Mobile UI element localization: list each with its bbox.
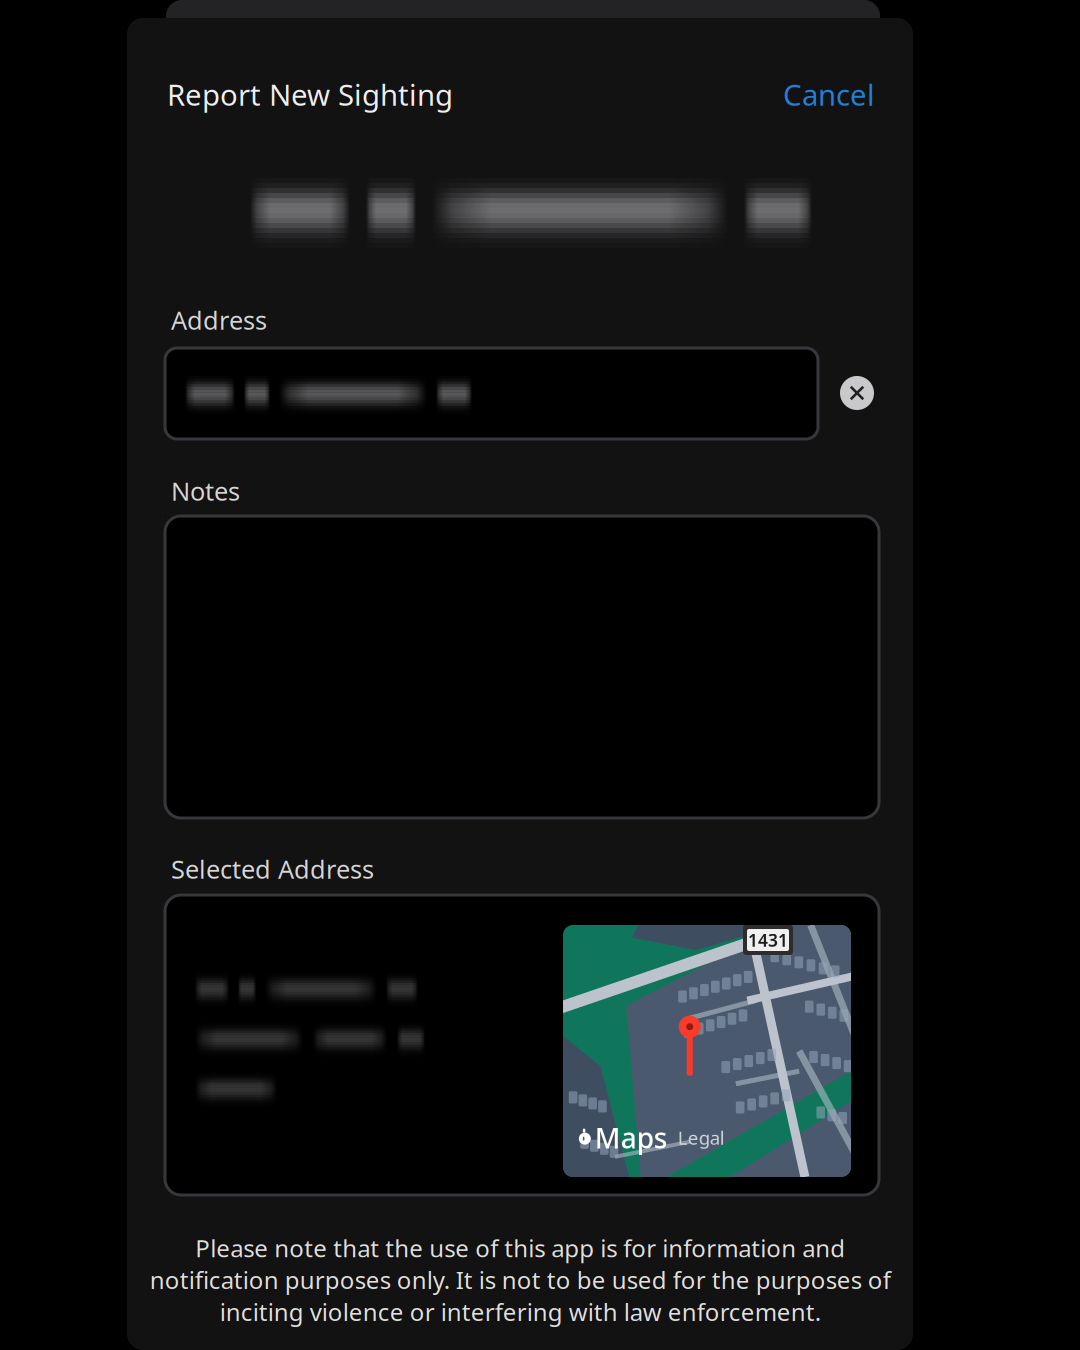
button[interactable]: Report New Sighting bbox=[167, 75, 453, 114]
button[interactable]: Address field bbox=[165, 348, 818, 439]
staticText: Please note that the use of this app is … bbox=[149, 1232, 890, 1328]
staticText: 1431 bbox=[748, 928, 788, 951]
staticText: Maps bbox=[595, 1119, 668, 1156]
staticText: Cancel bbox=[783, 75, 875, 114]
button[interactable]: Selected address bbox=[165, 895, 879, 1195]
staticText: Report New Sighting bbox=[167, 75, 453, 114]
button[interactable]: Notes field bbox=[165, 516, 879, 818]
staticText: Legal bbox=[678, 1125, 725, 1150]
staticText: Notes bbox=[171, 474, 240, 508]
button[interactable]: Cancel bbox=[775, 75, 875, 114]
staticText: Address bbox=[171, 303, 267, 337]
button[interactable]: Clear address bbox=[840, 376, 874, 410]
staticText: Selected Address bbox=[171, 852, 374, 886]
